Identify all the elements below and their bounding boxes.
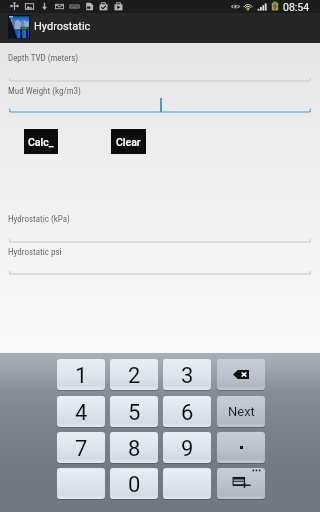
button[interactable]: 6 xyxy=(163,396,211,427)
button[interactable]: blank key xyxy=(57,468,105,499)
button[interactable]: Clear xyxy=(111,129,146,154)
staticText: 3 xyxy=(181,363,194,389)
button[interactable]: 7 xyxy=(57,432,105,463)
staticText: Mud Weight (kg/m3) xyxy=(8,86,81,97)
staticText: Hydrostatic psi xyxy=(8,247,62,258)
staticText: 7 xyxy=(75,436,88,462)
staticText: 1 xyxy=(75,363,88,389)
staticText: 4 xyxy=(75,400,88,426)
staticText: Clear xyxy=(116,136,141,148)
button[interactable]: 1 xyxy=(57,359,105,390)
staticText: 5 xyxy=(128,400,141,426)
staticText: Hydrostatic xyxy=(34,20,91,33)
button[interactable]: dot xyxy=(217,432,265,463)
staticText: 6 xyxy=(181,400,194,426)
staticText: Depth TVD (meters) xyxy=(8,53,79,64)
button[interactable]: Calc_ xyxy=(24,129,58,154)
button[interactable]: next xyxy=(217,396,265,427)
button[interactable]: 8 xyxy=(110,432,158,463)
button[interactable]: 0 xyxy=(110,468,158,499)
staticText: Next xyxy=(228,404,255,419)
staticText: 2 xyxy=(128,363,141,389)
staticText: 08:54 xyxy=(283,1,310,13)
staticText: 8 xyxy=(128,436,141,462)
button[interactable]: 4 xyxy=(57,396,105,427)
button[interactable]: 9 xyxy=(163,432,211,463)
button[interactable]: 3 xyxy=(163,359,211,390)
button[interactable]: 2 xyxy=(110,359,158,390)
button[interactable]: blank key xyxy=(163,468,211,499)
button[interactable]: back xyxy=(217,359,265,390)
staticText: 9 xyxy=(181,436,194,462)
button[interactable]: 5 xyxy=(110,396,158,427)
staticText: Hydrostatic (kPa) xyxy=(8,214,70,225)
button[interactable]: switch xyxy=(217,468,265,499)
staticText: 0 xyxy=(128,472,141,498)
staticText: Calc_ xyxy=(28,136,54,148)
